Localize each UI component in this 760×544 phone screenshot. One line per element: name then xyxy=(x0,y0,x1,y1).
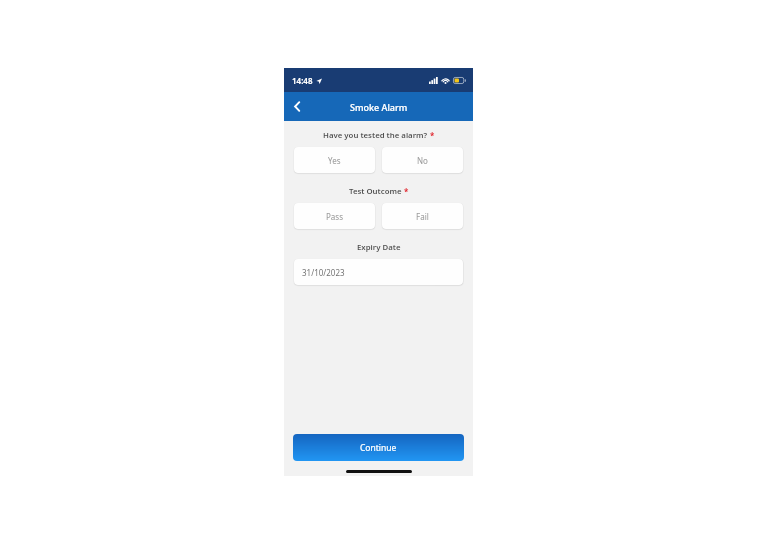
staticText: Smoke Alarm xyxy=(350,101,408,113)
staticText: Expiry Date xyxy=(357,242,401,253)
staticText: Continue xyxy=(360,442,397,454)
staticText: 14:48 xyxy=(292,75,313,86)
button[interactable]: Yes xyxy=(294,147,375,173)
button[interactable]: 31/10/2023 xyxy=(294,259,463,285)
staticText: Have you tested the alarm? xyxy=(323,130,428,141)
button[interactable]: Continue xyxy=(293,434,464,461)
button[interactable]: Pass xyxy=(294,203,375,229)
button[interactable]: Back xyxy=(284,92,310,121)
button[interactable]: Fail xyxy=(382,203,463,229)
staticText: Fail xyxy=(416,211,429,222)
staticText: Pass xyxy=(326,211,343,222)
staticText: * xyxy=(430,130,435,141)
staticText: * xyxy=(404,186,409,197)
staticText: Test Outcome xyxy=(349,186,402,197)
staticText: No xyxy=(417,155,428,166)
staticText: 31/10/2023 xyxy=(302,267,345,278)
button[interactable]: No xyxy=(382,147,463,173)
staticText: Yes xyxy=(328,155,341,166)
